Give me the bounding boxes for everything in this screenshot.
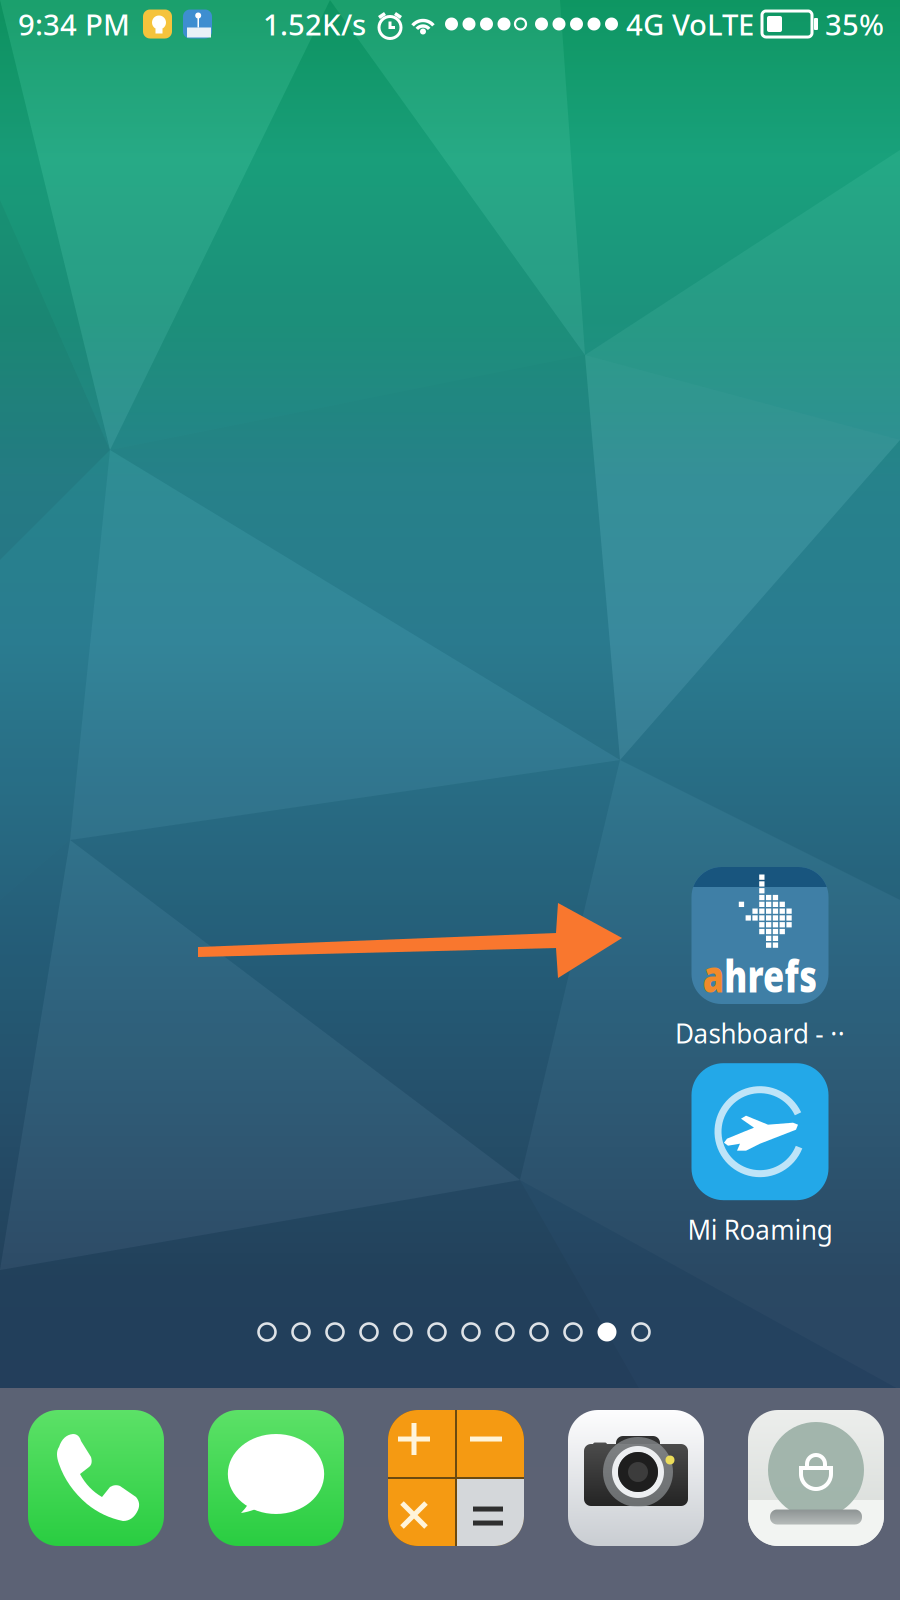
staticText: 35%: [825, 4, 884, 43]
button[interactable]: Security: [748, 1410, 884, 1546]
button[interactable]: Mi Roaming: [650, 1063, 870, 1247]
button[interactable]: Messages: [208, 1410, 344, 1546]
staticText: hrefs: [718, 949, 826, 1002]
staticText: 4G VoLTE: [626, 4, 754, 43]
button[interactable]: Camera: [568, 1410, 704, 1546]
button[interactable]: Phone: [28, 1410, 164, 1546]
staticText: 1.52K/s: [263, 4, 366, 43]
staticText: Dashboard - ··: [668, 1014, 851, 1051]
staticText: a: [693, 949, 718, 1002]
button[interactable]: Calculator: [388, 1410, 524, 1546]
staticText: 9:34 PM: [18, 4, 130, 43]
button[interactable]: a: [650, 867, 870, 1051]
staticText: Mi Roaming: [682, 1210, 838, 1247]
